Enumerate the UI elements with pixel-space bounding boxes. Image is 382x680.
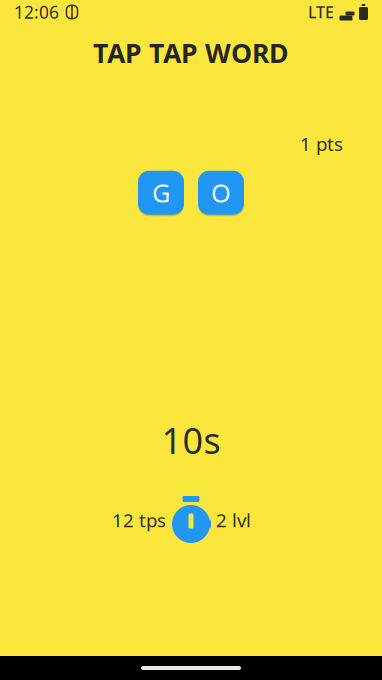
staticText: 12:06 [14, 0, 59, 23]
staticText: TAP TAP WORD [93, 35, 289, 70]
staticText: LTE [308, 1, 334, 23]
button[interactable]: O [198, 169, 244, 216]
button[interactable]: G [138, 169, 184, 216]
staticText: 1 pts [300, 131, 343, 156]
staticText: 10s [161, 416, 220, 464]
staticText: 2 lvl [216, 508, 251, 532]
staticText: 12 tps [112, 508, 166, 532]
staticText: O [211, 176, 231, 209]
staticText: G [152, 176, 170, 209]
